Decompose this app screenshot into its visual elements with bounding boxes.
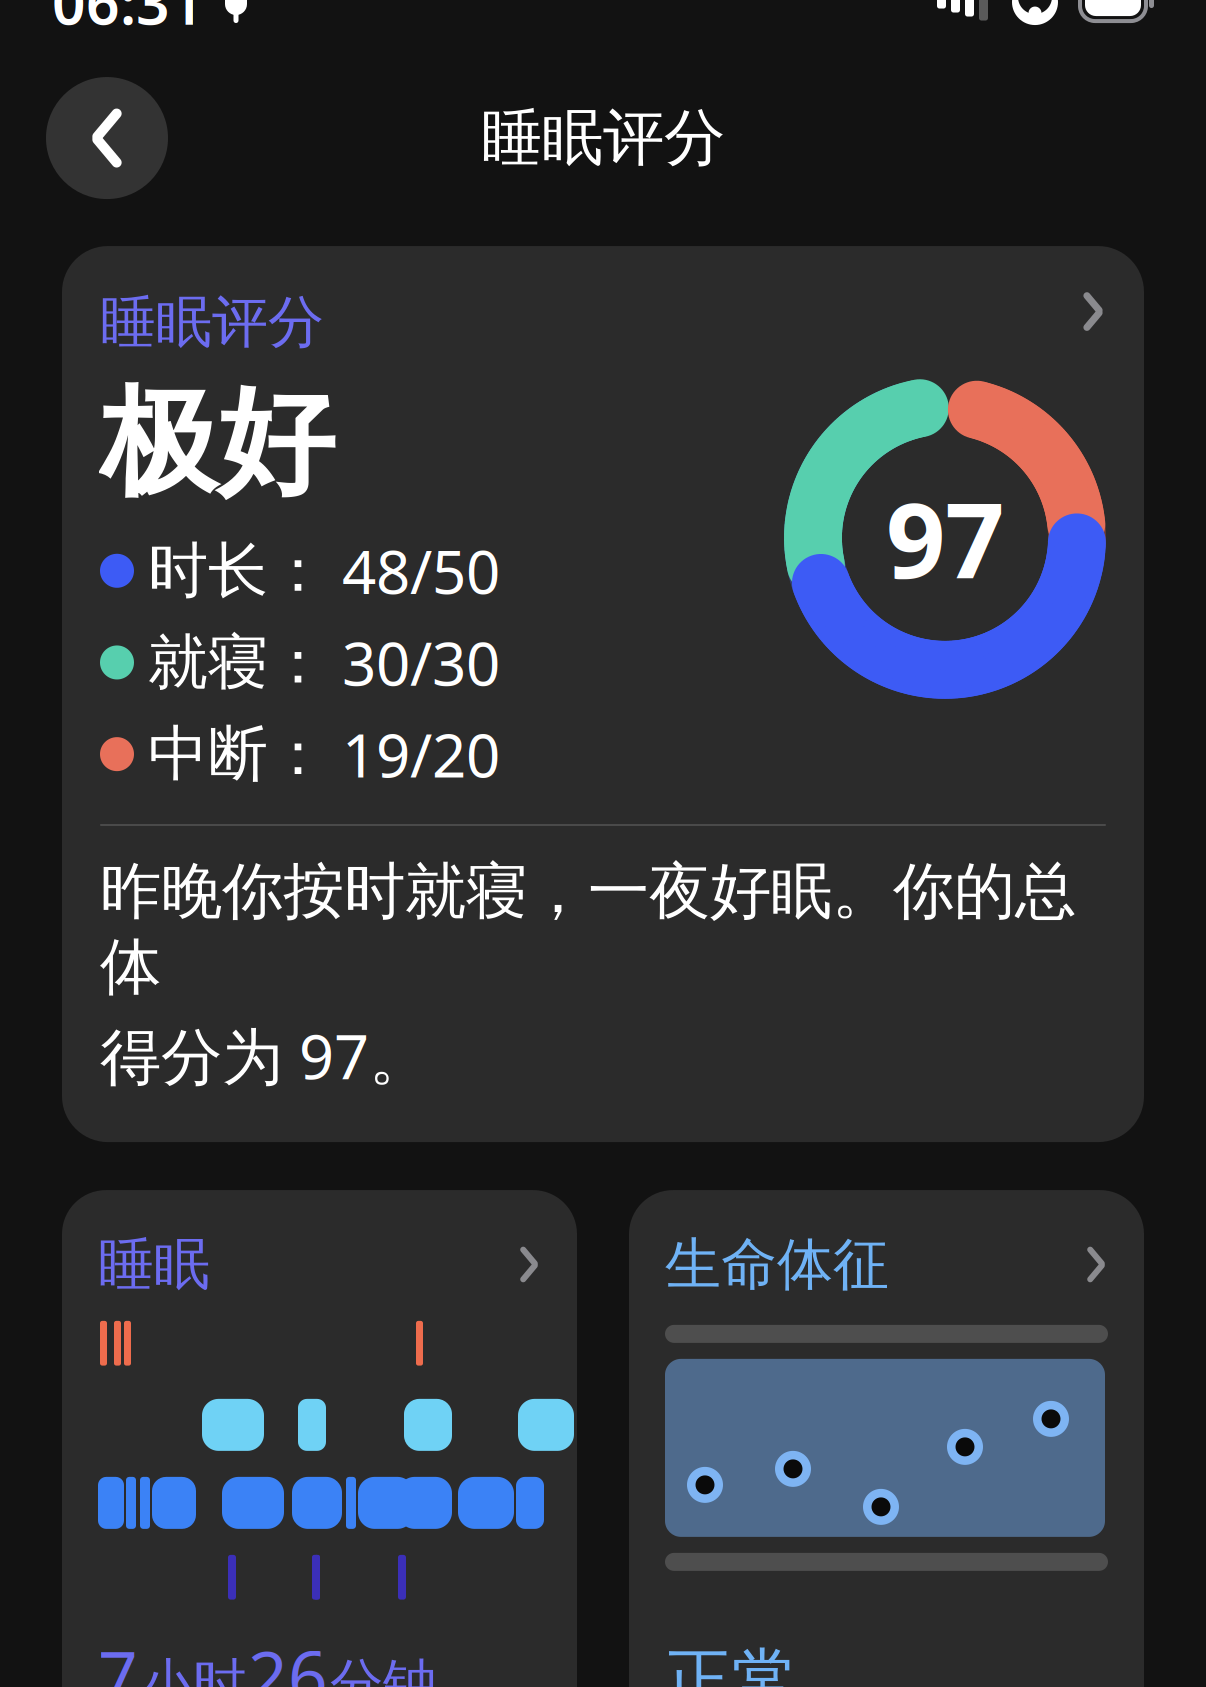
- staticText: 睡眠评分: [481, 100, 725, 176]
- button[interactable]: 生命体征: [629, 1190, 1144, 1687]
- staticText: 昨晚你按时就寝，一夜好眠。你的总体: [100, 854, 1076, 1005]
- staticText: 中断：: [148, 717, 328, 791]
- staticText: 正常: [665, 1639, 799, 1687]
- button[interactable]: 睡眠评分: [62, 246, 1144, 1142]
- staticText: 时长：: [148, 534, 328, 608]
- staticText: 就寝：: [148, 626, 328, 699]
- staticText: 48/50: [342, 531, 500, 611]
- staticText: 小时: [140, 1651, 246, 1687]
- staticText: 得分为 97。: [100, 1015, 430, 1096]
- staticText: 30/30: [342, 623, 500, 702]
- staticText: 睡眠: [98, 1230, 210, 1299]
- staticText: 26: [248, 1629, 328, 1687]
- button[interactable]: 睡眠: [62, 1190, 577, 1687]
- staticText: 19/20: [342, 714, 500, 794]
- staticText: 06:31: [52, 0, 204, 41]
- staticText: 分钟: [330, 1651, 436, 1687]
- staticText: 7: [98, 1629, 138, 1687]
- staticText: 97: [886, 469, 1004, 607]
- staticText: 极好: [100, 371, 334, 515]
- staticText: 睡眠评分: [100, 288, 324, 357]
- button[interactable]: 返回: [46, 77, 168, 199]
- staticText: 生命体征: [665, 1230, 889, 1299]
